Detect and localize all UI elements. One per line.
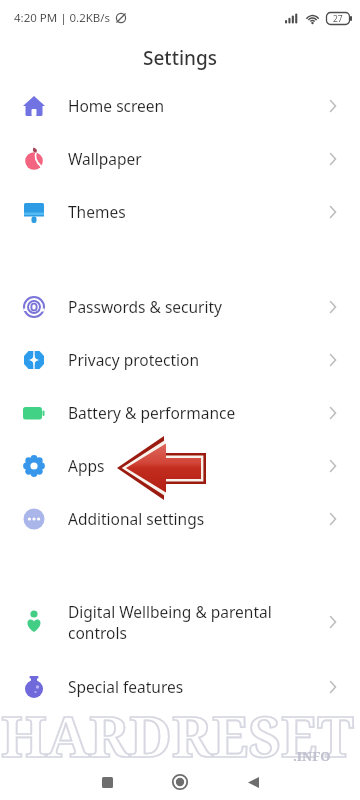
staticText: 4:20 PM | 0.2KB/s <box>14 10 111 26</box>
staticText: Battery & performance <box>68 402 236 423</box>
staticText: 27 <box>333 13 343 25</box>
button[interactable]: Special features <box>0 660 360 713</box>
button[interactable]: Wallpaper <box>0 132 360 185</box>
staticText: Home screen <box>68 95 165 116</box>
staticText: Privacy protection <box>68 349 200 370</box>
staticText: Additional settings <box>68 508 205 529</box>
staticText: Wallpaper <box>68 148 142 169</box>
staticText: Apps <box>68 455 105 476</box>
button[interactable]: Themes <box>0 185 360 238</box>
button[interactable]: Additional settings <box>0 492 360 545</box>
staticText: Settings <box>143 45 217 71</box>
button[interactable]: Digital Wellbeing & parental <box>0 590 360 654</box>
button[interactable]: Home screen <box>0 79 360 132</box>
staticText: HARDRESET <box>1 697 354 773</box>
button[interactable]: Privacy protection <box>0 333 360 386</box>
staticText: Passwords & security <box>68 296 223 317</box>
button[interactable]: Passwords & security <box>0 280 360 333</box>
staticText: Themes <box>68 201 126 222</box>
staticText: .INFO <box>293 747 331 765</box>
button[interactable] <box>225 764 281 800</box>
button[interactable]: Apps <box>0 439 360 492</box>
button[interactable]: Battery & performance <box>0 386 360 439</box>
staticText: Digital Wellbeing & parental <box>68 601 272 622</box>
button[interactable] <box>79 764 135 800</box>
staticText: Special features <box>68 676 184 697</box>
staticText: controls <box>68 622 127 643</box>
button[interactable] <box>152 764 208 800</box>
